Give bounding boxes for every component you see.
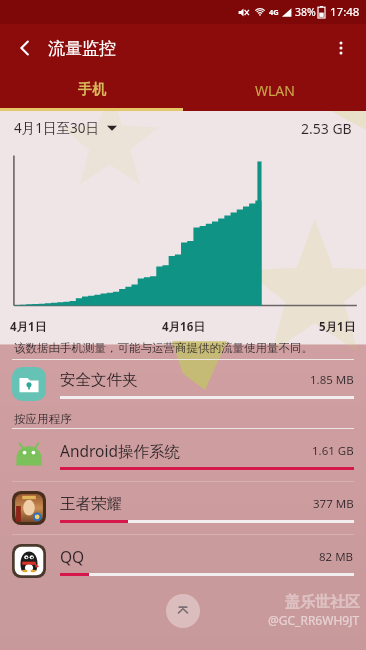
button[interactable]: 4月1日至30日 xyxy=(0,111,366,145)
staticText: 手机 xyxy=(78,81,106,99)
staticText: 5月1日 xyxy=(319,319,356,335)
staticText: @GC_RR6WH9JT xyxy=(268,612,360,628)
button[interactable]: More options xyxy=(322,29,360,67)
staticText: 4月1日 xyxy=(10,319,47,335)
staticText: 1.61 GB xyxy=(312,443,354,459)
staticText: 该数据由手机测量，可能与运营商提供的流量使用量不同。 xyxy=(14,341,313,355)
staticText: WLAN xyxy=(255,81,295,100)
staticText: 4月1日至30日 xyxy=(14,119,99,137)
staticText: 2.53 GB xyxy=(301,119,352,138)
staticText: 82 MB xyxy=(319,549,354,565)
button[interactable]: WLAN xyxy=(183,72,366,108)
staticText: 安全文件夹 xyxy=(60,370,138,390)
button[interactable]: Scroll to top xyxy=(166,594,200,628)
button[interactable]: 手机 xyxy=(0,72,183,108)
button[interactable]: 王者荣耀 xyxy=(0,482,366,534)
button[interactable]: Android操作系统 xyxy=(0,429,366,481)
staticText: 流量监控 xyxy=(48,38,116,59)
staticText: 1.85 MB xyxy=(310,372,354,388)
staticText: 王者荣耀 xyxy=(60,494,122,514)
staticText: Android操作系统 xyxy=(60,440,181,461)
staticText: 38% xyxy=(295,5,316,19)
button[interactable]: 安全文件夹 xyxy=(0,360,366,408)
staticText: 4G xyxy=(269,7,279,17)
button[interactable]: Back xyxy=(6,29,44,67)
button[interactable]: QQ xyxy=(0,535,366,587)
staticText: QQ xyxy=(60,546,85,567)
staticText: 盖乐世社区 xyxy=(285,593,360,612)
staticText: 按应用程序 xyxy=(14,412,72,426)
staticText: 4月16日 xyxy=(162,319,205,335)
staticText: 377 MB xyxy=(313,496,354,512)
staticText: 17:48 xyxy=(330,4,360,20)
